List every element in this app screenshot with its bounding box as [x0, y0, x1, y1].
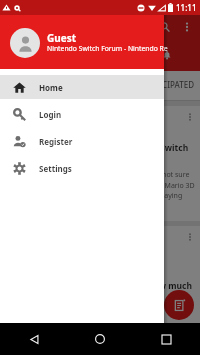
button[interactable]: MarioFan92 [0, 226, 200, 346]
staticText: Login [39, 109, 62, 120]
button[interactable]: MarioFan92 [0, 106, 200, 221]
staticText: I have been playing it for a while now a… [7, 170, 195, 200]
button[interactable]: More [183, 230, 197, 244]
button[interactable]: Login [0, 102, 164, 126]
button[interactable]: Forums [22, 44, 44, 66]
staticText: MarioFan92 [28, 110, 69, 120]
button[interactable]: PARTICIPATED [129, 79, 200, 90]
staticText: 11:11 [176, 2, 197, 13]
staticText: PARTICIPATED [140, 79, 194, 90]
button[interactable]: Settings [0, 156, 164, 180]
staticText: Nintendo Switch Forum [34, 20, 147, 34]
staticText: Settings [39, 163, 72, 174]
button[interactable]: Home [0, 75, 164, 99]
button[interactable]: New thread [164, 290, 194, 320]
staticText: Mario Odyssey is finally here on the Swi… [7, 142, 189, 154]
staticText: Register [39, 136, 73, 147]
staticText: LATEST [24, 79, 51, 90]
button[interactable]: Activity [111, 44, 133, 66]
button[interactable]: More options [177, 17, 197, 37]
button[interactable]: Register [0, 129, 164, 153]
staticText: Which upcoming Switch game are you looki… [7, 258, 193, 291]
button[interactable]: Guest [0, 0, 164, 69]
button[interactable]: LATEST [13, 79, 62, 90]
button[interactable]: Home [88, 327, 112, 351]
button[interactable]: What's new [67, 44, 89, 66]
button[interactable]: Alerts [156, 44, 178, 66]
button[interactable]: More [183, 110, 197, 124]
button[interactable]: Search [155, 17, 175, 37]
staticText: Home [39, 82, 63, 93]
button[interactable]: Back [22, 327, 46, 351]
staticText: Guest [47, 31, 77, 45]
button[interactable]: Recents [154, 327, 178, 351]
staticText: Nintendo Switch Forum - Nintendo Re [47, 44, 168, 53]
button[interactable]: Open navigation drawer [8, 17, 28, 37]
